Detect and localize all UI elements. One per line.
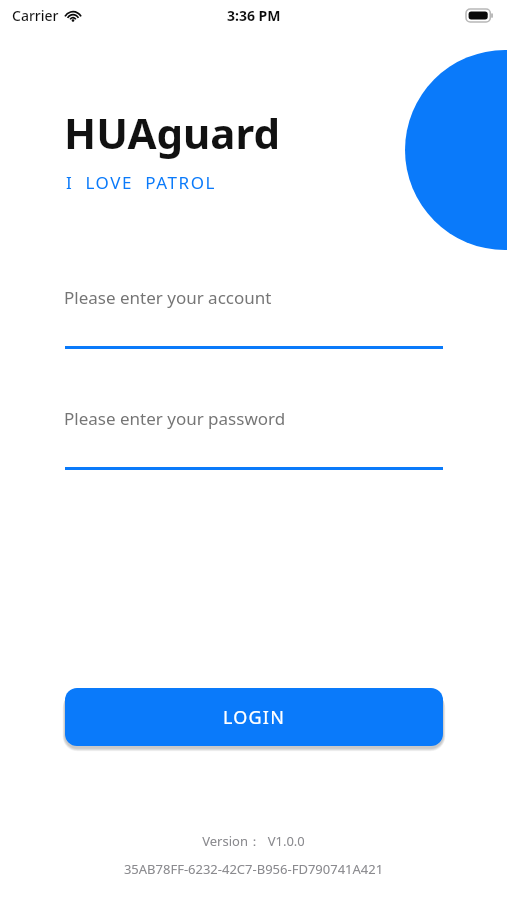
staticText: Please enter your password — [64, 407, 286, 430]
staticText: HUAguard — [64, 104, 281, 161]
staticText: Version： V1.0.0 — [0, 832, 507, 850]
staticText: Carrier — [12, 6, 59, 25]
staticText: Please enter your account — [64, 286, 272, 309]
staticText: 35AB78FF-6232-42C7-B956-FD790741A421 — [0, 860, 507, 878]
staticText: 3:36 PM — [227, 6, 281, 25]
staticText: LOGIN — [223, 705, 286, 730]
button[interactable]: LOGIN — [65, 688, 443, 746]
staticText: I LOVE PATROL — [66, 171, 217, 194]
